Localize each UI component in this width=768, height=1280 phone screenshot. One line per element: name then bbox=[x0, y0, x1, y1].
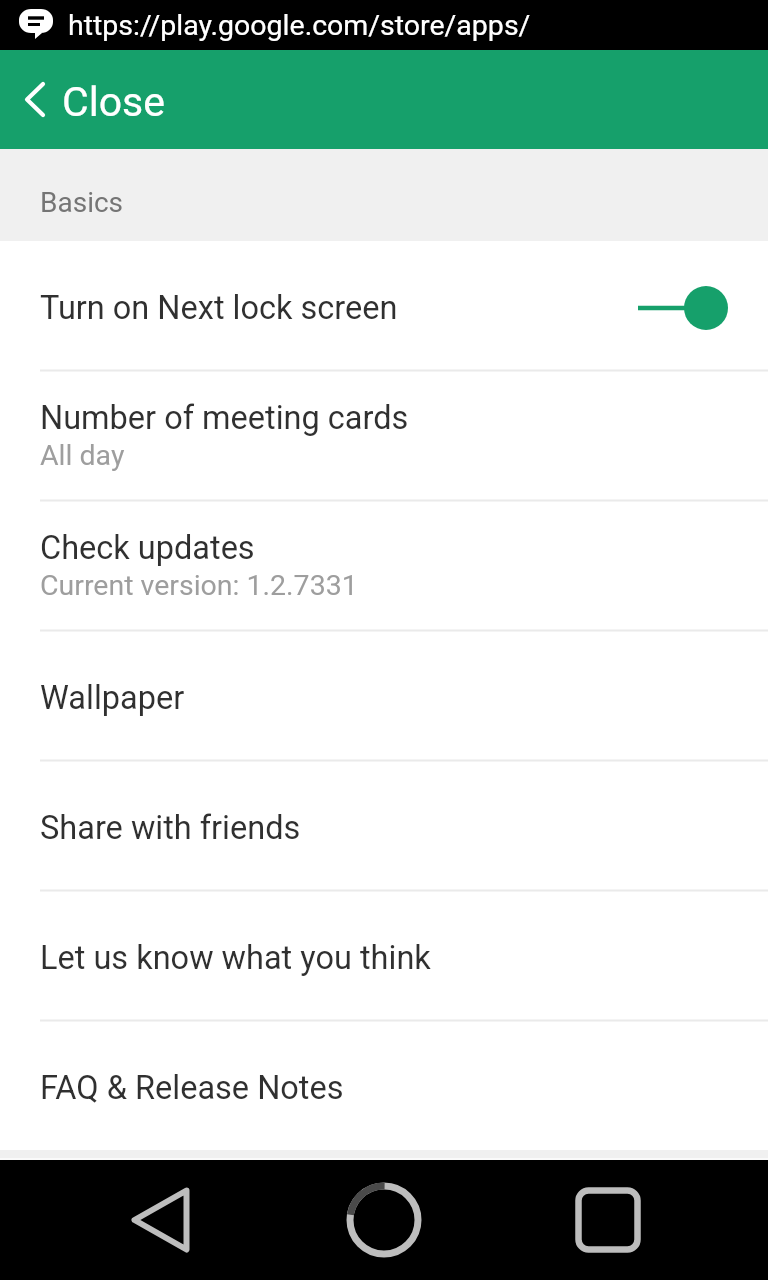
staticText: Basics bbox=[40, 186, 124, 219]
button[interactable]: Wallpaper bbox=[0, 631, 768, 760]
staticText: Close bbox=[62, 78, 165, 126]
staticText: Check updates bbox=[40, 529, 255, 567]
button[interactable]: Share with friends bbox=[0, 761, 768, 890]
button[interactable]: Back bbox=[120, 1160, 200, 1280]
button[interactable]: Check updates bbox=[0, 501, 768, 630]
button[interactable]: Number of meeting cards bbox=[0, 371, 768, 500]
staticText: All day bbox=[40, 439, 125, 472]
staticText: Current version: 1.2.7331 bbox=[40, 569, 358, 602]
button[interactable]: FAQ & Release Notes bbox=[0, 1021, 768, 1150]
staticText: Let us know what you think bbox=[40, 939, 431, 977]
button[interactable]: Turn on Next lock screen bbox=[0, 241, 768, 370]
staticText: Number of meeting cards bbox=[40, 399, 409, 437]
button[interactable]: Recents bbox=[568, 1160, 648, 1280]
staticText: Wallpaper bbox=[40, 679, 185, 717]
staticText: Share with friends bbox=[40, 809, 301, 847]
button[interactable]: Home bbox=[344, 1160, 424, 1280]
staticText: https://play.google.com/store/apps/ bbox=[68, 9, 531, 42]
button[interactable]: Close bbox=[0, 50, 768, 149]
button[interactable]: Let us know what you think bbox=[0, 891, 768, 1020]
staticText: Turn on Next lock screen bbox=[40, 289, 638, 327]
staticText: FAQ & Release Notes bbox=[40, 1069, 344, 1107]
